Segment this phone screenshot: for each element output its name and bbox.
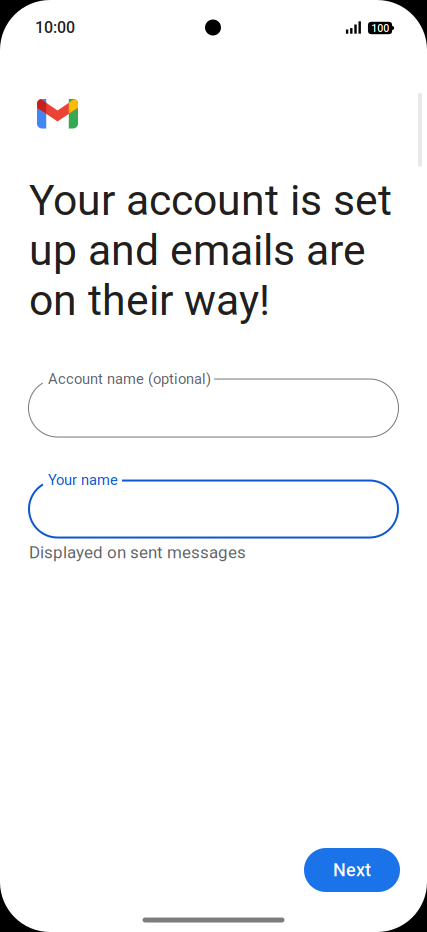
staticText: Next [333, 859, 371, 881]
staticText: 10:00 [35, 18, 75, 37]
staticText: Account name (optional) [48, 370, 211, 388]
staticText: Your account is set up and emails are on… [29, 175, 392, 325]
staticText: Displayed on sent messages [29, 542, 246, 562]
staticText: 100 [371, 22, 389, 34]
button[interactable]: Next [304, 848, 400, 892]
staticText: Your name [48, 471, 118, 489]
